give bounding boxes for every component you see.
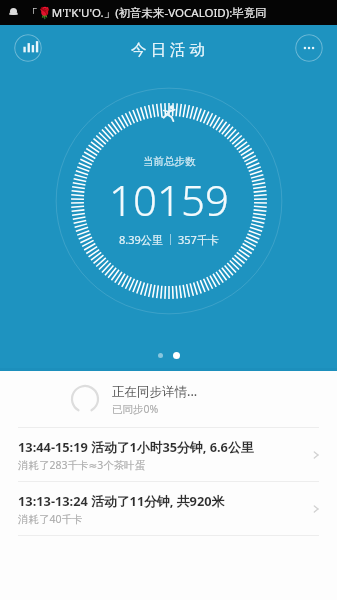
button[interactable]: Statistics	[14, 34, 42, 62]
staticText: 13:44-15:19 活动了1小时35分钟, 6.6公里	[18, 438, 254, 455]
staticText: 当前总步数	[143, 155, 196, 168]
staticText: 已同步0%	[112, 402, 159, 416]
staticText: 13:13-13:24 活动了11分钟, 共920米	[18, 492, 225, 509]
staticText: 10159	[109, 171, 229, 228]
button[interactable]: 13:13-13:24 活动了11分钟, 共920米	[0, 482, 337, 535]
button[interactable]: More options	[295, 34, 323, 62]
staticText: 357千卡	[178, 232, 219, 247]
staticText: 「🌹M'I'K'U'O.」(初音未来-VOCALOID):毕竟同	[26, 5, 267, 21]
staticText: 8.39公里	[119, 232, 163, 247]
button[interactable]: 正在同步详情...	[0, 371, 337, 427]
staticText: 今 日 活 动	[131, 38, 206, 59]
staticText: 消耗了40千卡	[18, 512, 83, 526]
button[interactable]: 13:44-15:19 活动了1小时35分钟, 6.6公里	[0, 428, 337, 481]
staticText: 正在同步详情...	[112, 383, 198, 400]
staticText: 消耗了283千卡≈3个茶叶蛋	[18, 458, 146, 472]
